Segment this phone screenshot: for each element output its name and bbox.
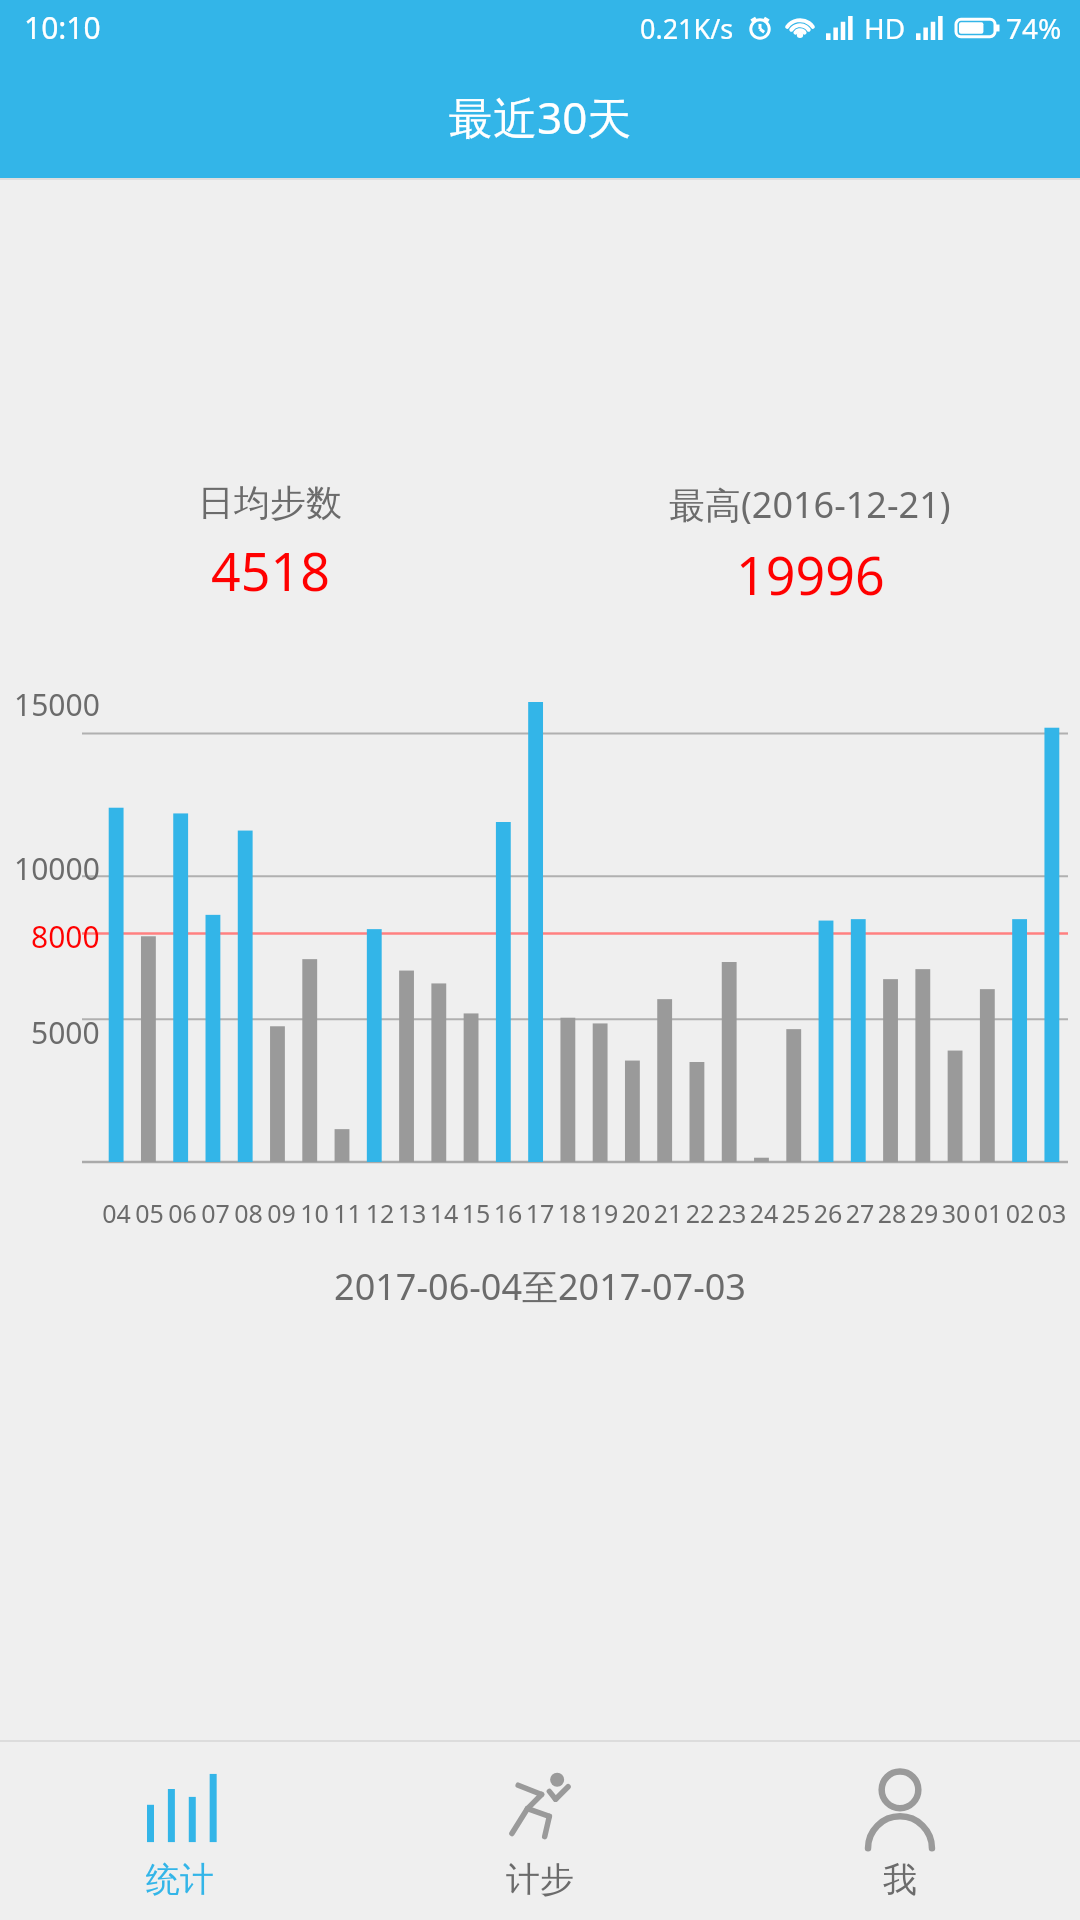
staticText: 19 — [588, 1196, 620, 1230]
staticText: 16 — [492, 1196, 524, 1230]
staticText: 29 — [908, 1196, 940, 1230]
staticText: 30 — [940, 1196, 972, 1230]
staticText: 08 — [232, 1196, 265, 1230]
staticText: 10:10 — [24, 7, 101, 48]
staticText: 23 — [716, 1196, 748, 1230]
staticText: 03 — [1036, 1196, 1068, 1230]
staticText: 26 — [812, 1196, 844, 1230]
staticText: 8000 — [31, 916, 100, 957]
staticText: 最高(2016-12-21) — [669, 480, 951, 529]
staticText: 15 — [460, 1196, 492, 1230]
staticText: 14 — [428, 1196, 460, 1230]
staticText: 最近30天 — [449, 87, 632, 147]
staticText: 12 — [364, 1196, 396, 1230]
staticText: 5000 — [31, 1012, 100, 1053]
staticText: 25 — [780, 1196, 812, 1230]
staticText: 09 — [265, 1196, 298, 1230]
staticText: 74% — [1006, 9, 1062, 47]
staticText: 2017-06-04至2017-07-03 — [0, 1262, 1080, 1311]
staticText: 28 — [876, 1196, 908, 1230]
staticText: 我 — [883, 1858, 917, 1901]
staticText: 19996 — [736, 539, 885, 610]
staticText: 07 — [199, 1196, 232, 1230]
other: 统计 — [141, 1768, 219, 1846]
staticText: 13 — [396, 1196, 428, 1230]
staticText: 日均步数 — [198, 480, 342, 525]
staticText: 01 — [972, 1196, 1004, 1230]
staticText: 15000 — [14, 684, 100, 725]
staticText: 27 — [844, 1196, 876, 1230]
other: 我 — [861, 1768, 939, 1846]
staticText: 17 — [524, 1196, 556, 1230]
staticText: 11 — [331, 1196, 364, 1230]
staticText: HD — [864, 9, 906, 47]
button[interactable]: 统计 — [0, 1742, 360, 1920]
other: 计步 — [501, 1768, 579, 1846]
staticText: 计步 — [506, 1858, 574, 1901]
staticText: 02 — [1004, 1196, 1036, 1230]
staticText: 22 — [684, 1196, 716, 1230]
staticText: 06 — [166, 1196, 199, 1230]
staticText: 24 — [748, 1196, 780, 1230]
staticText: 10 — [298, 1196, 331, 1230]
staticText: 20 — [620, 1196, 652, 1230]
staticText: 21 — [652, 1196, 684, 1230]
button[interactable]: 我 — [720, 1742, 1080, 1920]
staticText: 04 — [100, 1196, 133, 1230]
staticText: 18 — [556, 1196, 588, 1230]
staticText: 10000 — [14, 848, 100, 889]
staticText: 统计 — [146, 1858, 214, 1901]
staticText: 4518 — [211, 535, 330, 606]
staticText: 05 — [133, 1196, 166, 1230]
staticText: 0.21K/s — [640, 10, 734, 47]
button[interactable]: 计步 — [360, 1742, 720, 1920]
